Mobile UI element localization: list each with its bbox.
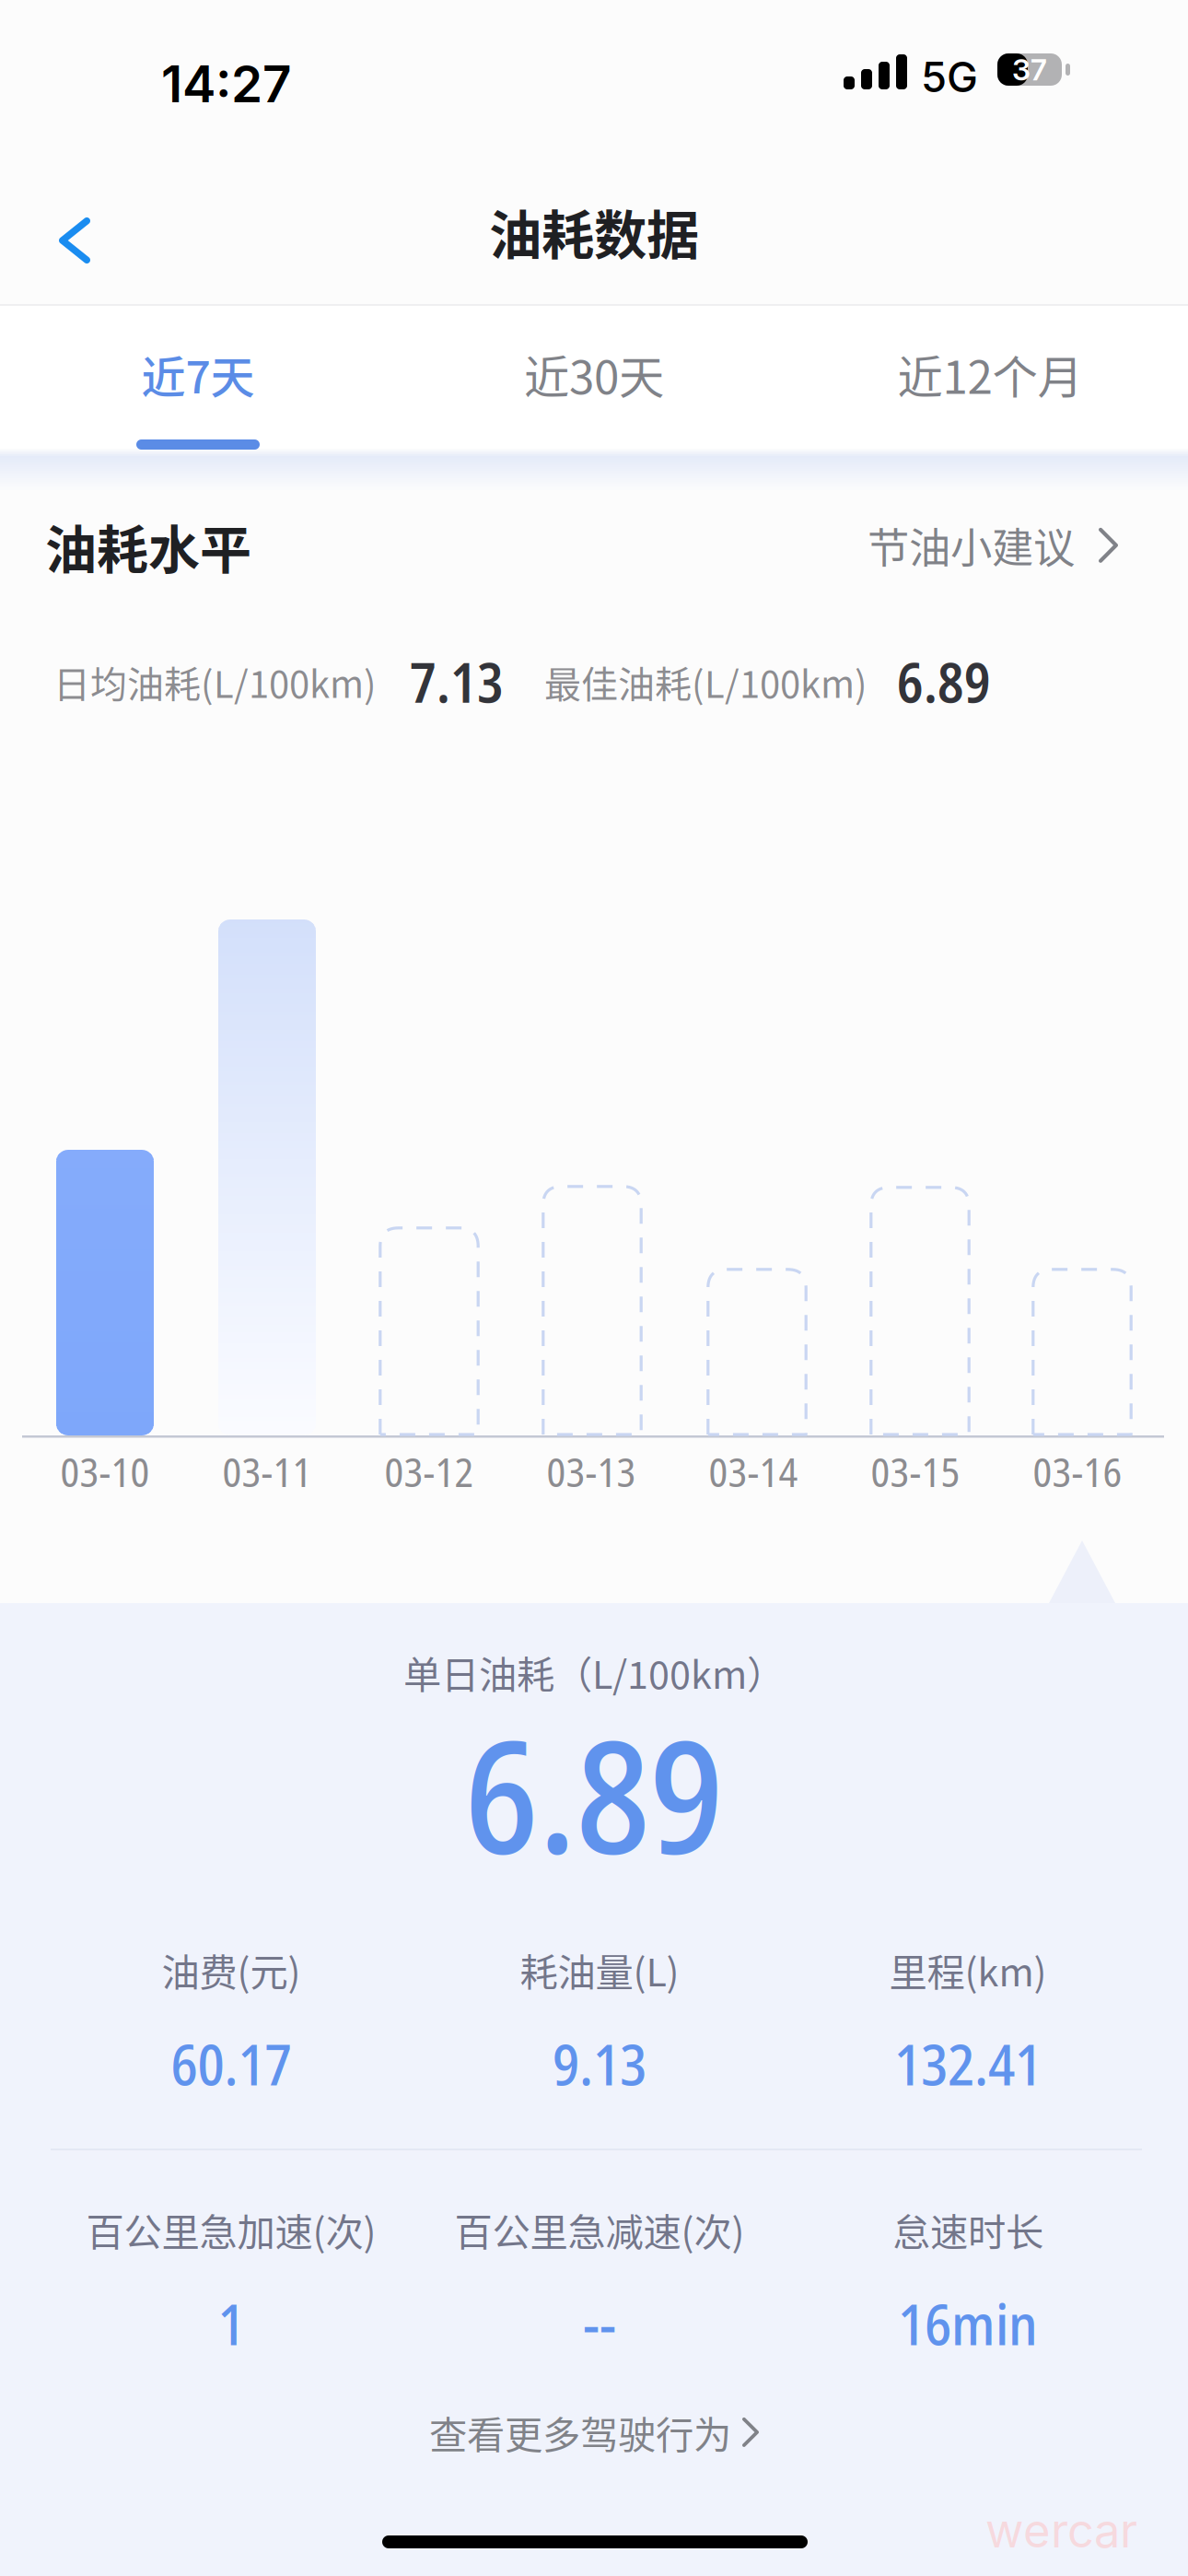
staticText: 1 <box>218 2285 245 2362</box>
staticText: 16min <box>898 2285 1038 2362</box>
staticText: 查看更多驾驶行为 <box>429 2405 731 2460</box>
button[interactable]: 近12个月 <box>792 298 1188 467</box>
staticText: 里程(km) <box>889 1942 1047 1997</box>
staticText: 03-14 <box>709 1444 798 1499</box>
staticText: 百公里急加速(次) <box>86 2202 376 2257</box>
staticText: 132.41 <box>894 2025 1042 2102</box>
staticText: 60.17 <box>171 2025 291 2102</box>
button[interactable]: 查看更多驾驶行为 <box>0 2394 1188 2471</box>
staticText: 日均油耗(L/100km) <box>53 655 377 708</box>
staticText: 14:27 <box>161 53 291 114</box>
staticText: 节油小建议 <box>868 515 1075 575</box>
staticText: 油费(元) <box>162 1942 301 1997</box>
staticText: -- <box>583 2285 616 2362</box>
staticText: 近12个月 <box>897 341 1083 407</box>
staticText: 03-13 <box>547 1444 636 1499</box>
staticText: 百公里急减速(次) <box>454 2202 745 2257</box>
button[interactable]: 近30天 <box>396 298 792 467</box>
staticText: 7.13 <box>410 645 504 719</box>
staticText: 5G <box>921 52 978 102</box>
button[interactable]: 节油小建议 <box>868 515 1118 575</box>
staticText: wercar <box>985 2502 1137 2559</box>
staticText: 03-12 <box>384 1444 474 1499</box>
staticText: 03-10 <box>60 1444 150 1499</box>
staticText: 9.13 <box>553 2025 646 2102</box>
staticText: 怠速时长 <box>892 2202 1043 2257</box>
staticText: 最佳油耗(L/100km) <box>544 655 868 708</box>
button[interactable]: 近7天 <box>0 298 396 467</box>
staticText: 6.89 <box>897 645 991 719</box>
staticText: 油耗水平 <box>45 509 251 583</box>
staticText: 03-16 <box>1033 1444 1122 1499</box>
button[interactable]: Back <box>0 195 127 286</box>
staticText: 近7天 <box>141 342 255 406</box>
staticText: 油耗数据 <box>489 193 699 269</box>
staticText: 03-11 <box>222 1444 312 1499</box>
staticText: 耗油量(L) <box>520 1942 679 1997</box>
staticText: 近30天 <box>524 341 664 407</box>
staticText: 03-15 <box>871 1444 960 1499</box>
staticText: 37 <box>1012 52 1047 87</box>
staticText: 单日油耗（L/100km） <box>403 1645 785 1700</box>
staticText: 6.89 <box>465 1688 723 1899</box>
